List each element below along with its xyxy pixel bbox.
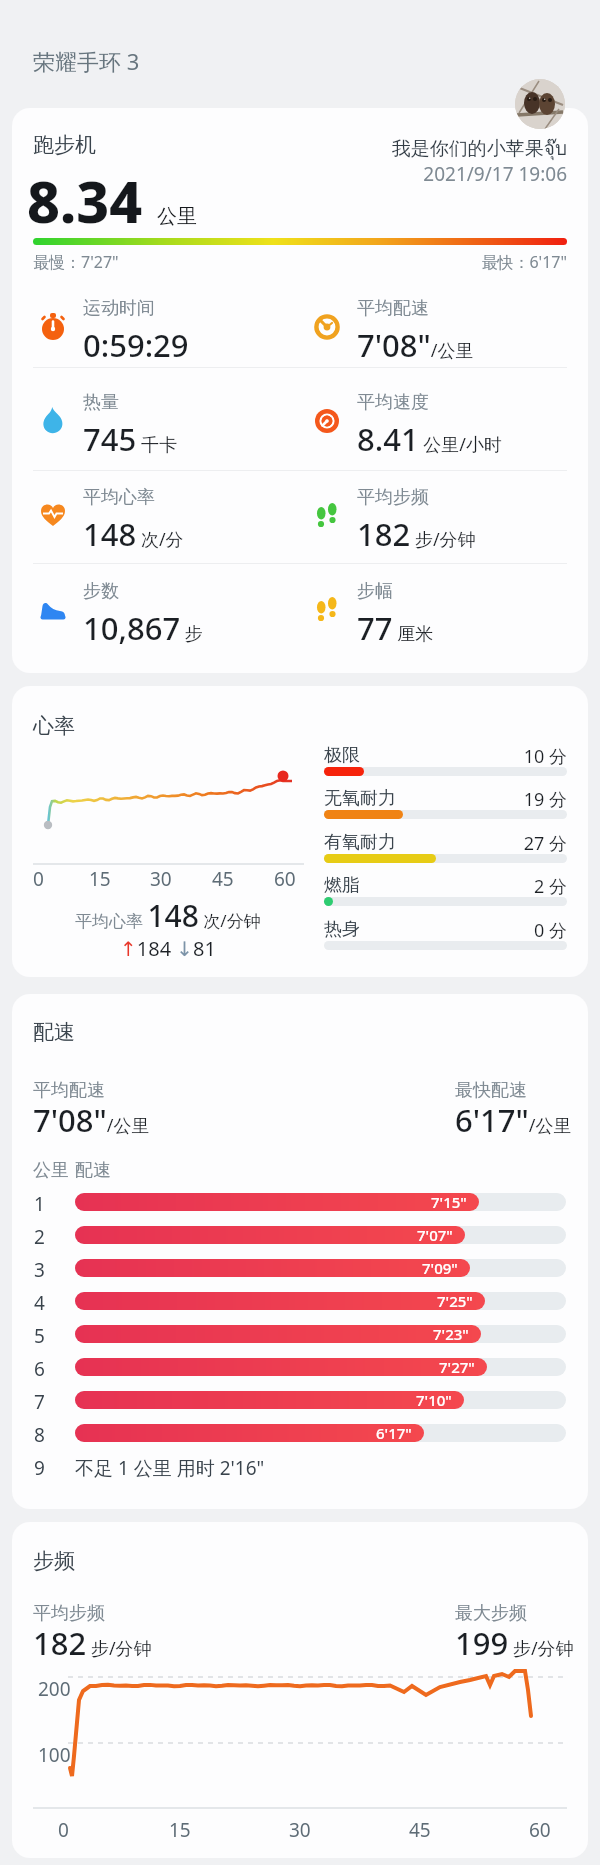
staticText: 7 [34, 1389, 45, 1415]
staticText: 最快：6'17" [481, 251, 567, 273]
staticText: 最快配速 [455, 1079, 527, 1102]
staticText: 我是你们的小苹果จุ๊บ [391, 133, 567, 163]
staticText: 7'25" [437, 1291, 473, 1311]
staticText: 4 [34, 1290, 45, 1316]
staticText: 0 [58, 1817, 69, 1843]
staticText: 77 厘米 [357, 607, 434, 649]
staticText: 平均配速 [33, 1079, 105, 1102]
staticText: 8.41 公里/小时 [357, 418, 503, 460]
staticText: 182 步/分钟 [33, 1622, 152, 1664]
staticText: 148 次/分 [83, 513, 184, 555]
staticText: 7'08"/公里 [357, 324, 474, 366]
staticText: 0:59:29 [83, 324, 189, 366]
staticText: 27 分 [523, 831, 567, 856]
staticText: 最大步频 [455, 1602, 527, 1625]
staticText: 极限 [324, 744, 360, 767]
staticText: 3 [34, 1257, 45, 1283]
staticText: 15 [89, 866, 111, 892]
staticText: 最慢：7'27" [33, 251, 119, 273]
staticText: 9 [34, 1455, 45, 1481]
staticText: 0 [33, 866, 44, 892]
staticText: 运动时间 [83, 297, 155, 320]
staticText: 10,867 步 [83, 607, 203, 649]
staticText: 30 [150, 866, 172, 892]
staticText: 2021/9/17 19:06 [423, 161, 567, 187]
staticText: 无氧耐力 [324, 787, 396, 810]
button[interactable] [515, 79, 565, 129]
staticText: 2 分 [534, 874, 567, 899]
staticText: 182 步/分钟 [357, 513, 476, 555]
staticText: 热身 [324, 918, 360, 941]
staticText: 15 [169, 1817, 191, 1843]
staticText: 7'08"/公里 [33, 1099, 150, 1141]
staticText: 19 分 [523, 787, 567, 812]
staticText: 7'10" [416, 1390, 452, 1410]
staticText: 公里 [33, 1159, 69, 1182]
staticText: 8 [34, 1422, 45, 1448]
staticText: 45 [409, 1817, 431, 1843]
staticText: 7'27" [439, 1357, 475, 1377]
staticText: 平均速度 [357, 391, 429, 414]
staticText: 6'17"/公里 [455, 1099, 572, 1141]
staticText: 平均心率 148 次/分钟 [75, 895, 261, 936]
staticText: 2 [34, 1224, 45, 1250]
button[interactable]: 配速 [12, 994, 588, 1509]
staticText: 45 [212, 866, 234, 892]
staticText: 0 分 [534, 918, 567, 943]
staticText: 跑步机 [33, 132, 96, 158]
staticText: 745 千卡 [83, 418, 177, 460]
staticText: 199 步/分钟 [455, 1622, 574, 1664]
button[interactable]: 心率 [12, 686, 588, 977]
staticText: 6 [34, 1356, 45, 1382]
staticText: 平均步频 [357, 486, 429, 509]
staticText: 平均步频 [33, 1602, 105, 1625]
staticText: 6'17" [376, 1423, 412, 1443]
staticText: 燃脂 [324, 874, 360, 897]
staticText: 配速 [75, 1159, 111, 1182]
staticText: 200 [38, 1676, 71, 1702]
staticText: ↑184 ↓81 [120, 935, 216, 962]
staticText: 7'07" [417, 1225, 453, 1245]
staticText: 配速 [33, 1019, 75, 1045]
staticText: 60 [529, 1817, 551, 1843]
staticText: 10 分 [523, 744, 567, 769]
staticText: 1 [34, 1191, 45, 1217]
staticText: 7'09" [422, 1258, 458, 1278]
staticText: 7'23" [433, 1324, 469, 1344]
staticText: 心率 [33, 713, 75, 739]
staticText: 不足 1 公里 用时 2'16" [75, 1455, 265, 1481]
staticText: 热量 [83, 391, 119, 414]
staticText: 荣耀手环 3 [33, 46, 140, 76]
staticText: 平均配速 [357, 297, 429, 320]
staticText: 7'15" [431, 1192, 467, 1212]
button[interactable]: 步频 [12, 1522, 588, 1858]
button[interactable]: 跑步机 [12, 108, 588, 673]
staticText: 30 [289, 1817, 311, 1843]
staticText: 步幅 [357, 580, 393, 603]
staticText: 有氧耐力 [324, 831, 396, 854]
staticText: 平均心率 [83, 486, 155, 509]
staticText: 100 [38, 1742, 71, 1768]
staticText: 步频 [33, 1548, 75, 1574]
staticText: 8.34 公里 [27, 162, 197, 240]
staticText: 60 [274, 866, 296, 892]
staticText: 5 [34, 1323, 45, 1349]
staticText: 步数 [83, 580, 119, 603]
